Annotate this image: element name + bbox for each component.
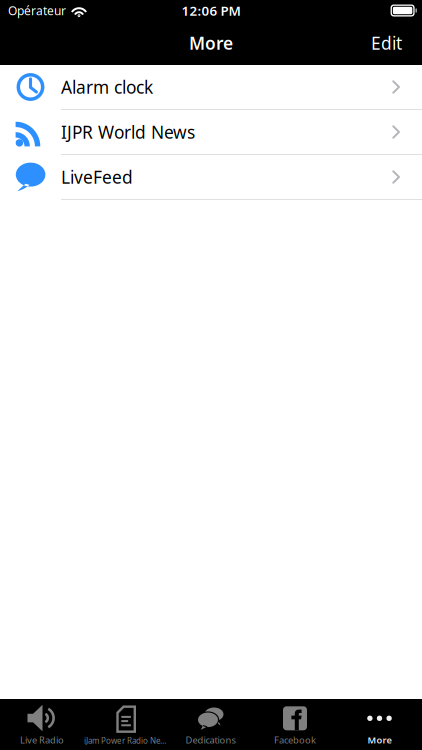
staticText: Opérateur <box>8 2 66 18</box>
button[interactable]: LiveFeed <box>0 155 422 200</box>
staticText: More <box>367 734 391 746</box>
button[interactable]: Alarm clock <box>0 65 422 110</box>
staticText: iJam Power Radio News <box>84 735 168 746</box>
staticText: More <box>189 31 233 54</box>
staticText: Edit <box>371 31 402 54</box>
button[interactable]: iJam Power Radio News <box>84 699 168 750</box>
staticText: Facebook <box>274 734 316 746</box>
button[interactable]: Dedications <box>168 699 253 750</box>
button[interactable]: More <box>337 699 422 750</box>
staticText: Dedications <box>185 734 235 746</box>
button[interactable]: IJPR World News <box>0 110 422 155</box>
staticText: LiveFeed <box>61 165 133 188</box>
staticText: IJPR World News <box>61 120 195 143</box>
button[interactable]: Live Radio <box>0 699 84 750</box>
staticText: Alarm clock <box>61 75 153 98</box>
button[interactable]: Edit <box>351 21 422 65</box>
button[interactable]: Facebook <box>253 699 337 750</box>
staticText: Live Radio <box>20 734 64 746</box>
staticText: 12:06 PM <box>181 2 240 19</box>
